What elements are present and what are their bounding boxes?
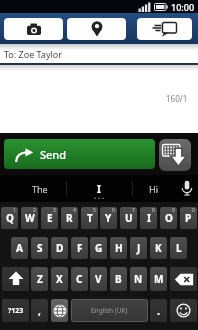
button[interactable]: G xyxy=(90,237,107,259)
button[interactable]: C xyxy=(71,267,88,291)
button[interactable]: L xyxy=(170,237,187,259)
button[interactable] xyxy=(137,18,192,40)
staticText: 4 xyxy=(73,207,76,214)
staticText: Y xyxy=(105,211,112,225)
staticText: A xyxy=(16,241,23,255)
button[interactable]: K xyxy=(150,237,167,259)
button[interactable]: R xyxy=(61,207,78,229)
button[interactable]: B xyxy=(110,267,127,291)
staticText: Q xyxy=(6,211,14,225)
staticText: 160/1 xyxy=(166,93,188,104)
button[interactable]: English (UK) xyxy=(71,299,148,322)
button[interactable]: I xyxy=(140,207,157,229)
staticText: To: Zoe Taylor xyxy=(4,48,62,60)
button[interactable]: W xyxy=(21,207,38,229)
staticText: R xyxy=(66,211,73,225)
staticText: O xyxy=(165,211,173,225)
staticText: I xyxy=(147,211,151,225)
staticText: S xyxy=(37,241,43,255)
button[interactable] xyxy=(2,267,29,291)
staticText: 0 xyxy=(192,207,195,214)
staticText: , xyxy=(38,304,41,318)
staticText: 8 xyxy=(152,207,155,214)
staticText: N xyxy=(134,272,143,286)
button[interactable]: ?123 xyxy=(2,299,29,322)
staticText: U xyxy=(125,211,133,225)
button[interactable]: A xyxy=(11,237,28,259)
button[interactable]: To: Zoe Taylor xyxy=(0,44,198,63)
staticText: Send xyxy=(40,147,67,162)
button[interactable] xyxy=(4,18,63,40)
staticText: E xyxy=(47,211,53,225)
staticText: L xyxy=(176,241,182,255)
staticText: H xyxy=(115,241,123,255)
staticText: 6 xyxy=(112,207,115,214)
button[interactable]: Hi xyxy=(133,175,173,202)
staticText: . xyxy=(157,303,161,318)
button[interactable]: I xyxy=(67,175,131,202)
staticText: Z xyxy=(37,272,43,286)
staticText: Hi xyxy=(149,183,158,195)
staticText: G xyxy=(95,241,103,255)
button[interactable]: E xyxy=(41,207,58,229)
staticText: V xyxy=(95,272,102,286)
button[interactable]: H xyxy=(110,237,127,259)
staticText: C xyxy=(76,272,83,286)
button[interactable]: N xyxy=(130,267,147,291)
button[interactable]: T xyxy=(81,207,98,229)
button[interactable] xyxy=(170,299,197,322)
button[interactable]: S xyxy=(31,237,48,259)
staticText: J xyxy=(137,241,141,255)
staticText: 2 xyxy=(33,207,36,214)
button[interactable] xyxy=(170,267,197,291)
staticText: 7 xyxy=(132,207,135,214)
staticText: D xyxy=(56,241,64,255)
staticText: 3 xyxy=(53,207,56,214)
button[interactable] xyxy=(67,18,126,40)
button[interactable]: V xyxy=(90,267,107,291)
staticText: 10:00 xyxy=(171,1,195,13)
staticText: I xyxy=(97,182,101,196)
button[interactable] xyxy=(51,299,68,322)
staticText: 1 xyxy=(13,207,16,214)
button[interactable]: Q xyxy=(1,207,18,229)
button[interactable]: P xyxy=(180,207,197,229)
button[interactable]: J xyxy=(130,237,147,259)
button[interactable]: The xyxy=(14,175,66,202)
button[interactable]: Y xyxy=(100,207,117,229)
staticText: The xyxy=(32,183,48,195)
staticText: F xyxy=(77,241,83,255)
button[interactable]: , xyxy=(31,299,48,322)
staticText: K xyxy=(155,241,162,255)
staticText: P xyxy=(185,211,192,225)
staticText: 9 xyxy=(172,207,175,214)
staticText: W xyxy=(25,211,35,225)
button[interactable]: Z xyxy=(31,267,48,291)
staticText: ?123 xyxy=(8,306,24,316)
button[interactable]: . xyxy=(150,299,167,322)
staticText: 5 xyxy=(93,207,96,214)
button[interactable]: X xyxy=(51,267,68,291)
staticText: M xyxy=(154,272,164,286)
button[interactable]: D xyxy=(51,237,68,259)
staticText: English (UK) xyxy=(91,306,128,315)
staticText: T xyxy=(87,211,93,225)
button[interactable]: U xyxy=(120,207,137,229)
button[interactable] xyxy=(159,139,191,171)
button[interactable]: Send xyxy=(4,139,155,169)
staticText: X xyxy=(56,272,63,286)
staticText: B xyxy=(115,272,122,286)
button[interactable]: M xyxy=(150,267,167,291)
button[interactable]: F xyxy=(71,237,88,259)
button[interactable] xyxy=(176,175,198,202)
button[interactable]: O xyxy=(160,207,177,229)
